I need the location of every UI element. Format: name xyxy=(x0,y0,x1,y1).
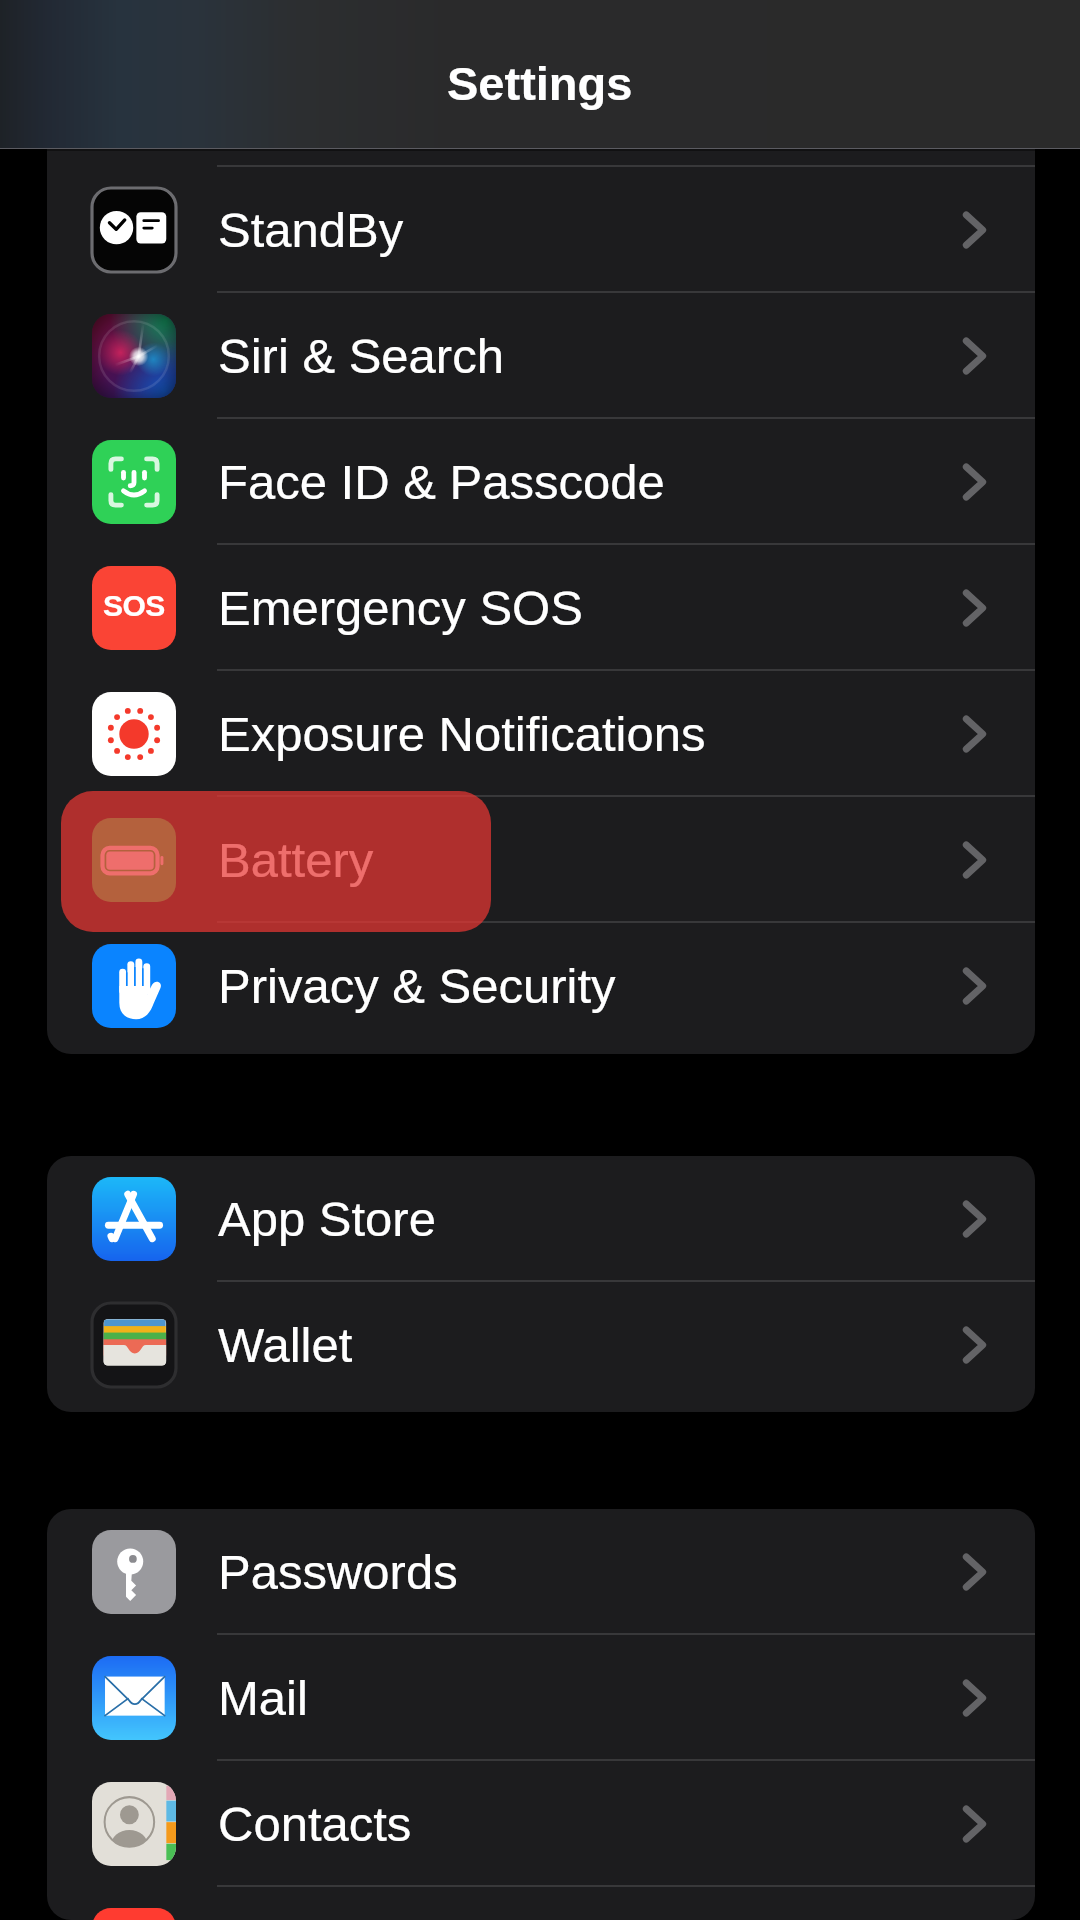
staticText: Exposure Notifications xyxy=(218,707,706,762)
staticText: Emergency SOS xyxy=(218,581,583,636)
staticText: Passwords xyxy=(218,1545,458,1600)
button[interactable]: StandBy xyxy=(47,167,1035,293)
staticText: Wi-Fi xyxy=(218,100,333,132)
button[interactable]: Siri & Search xyxy=(47,293,1035,419)
staticText: Wallet xyxy=(218,1318,353,1373)
staticText: SOS xyxy=(103,589,165,623)
button[interactable]: Exposure Notifications xyxy=(47,671,1035,797)
staticText: Siri & Search xyxy=(218,329,504,384)
button[interactable]: Contacts xyxy=(47,1761,1035,1887)
staticText: Settings xyxy=(447,57,633,110)
button[interactable]: Privacy & Security xyxy=(47,923,1035,1049)
button[interactable]: Mail xyxy=(47,1635,1035,1761)
button[interactable]: Passwords xyxy=(47,1509,1035,1635)
staticText: Battery xyxy=(218,833,374,888)
button[interactable]: Calendar xyxy=(47,1887,1035,1920)
button[interactable]: Battery xyxy=(47,797,1035,923)
staticText: Contacts xyxy=(218,1797,412,1852)
button[interactable]: Wallet xyxy=(47,1282,1035,1408)
staticText: Mail xyxy=(218,1671,308,1726)
staticText: Face ID & Passcode xyxy=(218,455,665,510)
button[interactable]: Wi-Fi xyxy=(47,100,1035,167)
staticText: App Store xyxy=(218,1192,436,1247)
staticText: Privacy & Security xyxy=(218,959,616,1014)
button[interactable]: App Store xyxy=(47,1156,1035,1282)
button[interactable]: SOS xyxy=(47,545,1035,671)
staticText: StandBy xyxy=(218,203,404,258)
button[interactable]: Face ID & Passcode xyxy=(47,419,1035,545)
